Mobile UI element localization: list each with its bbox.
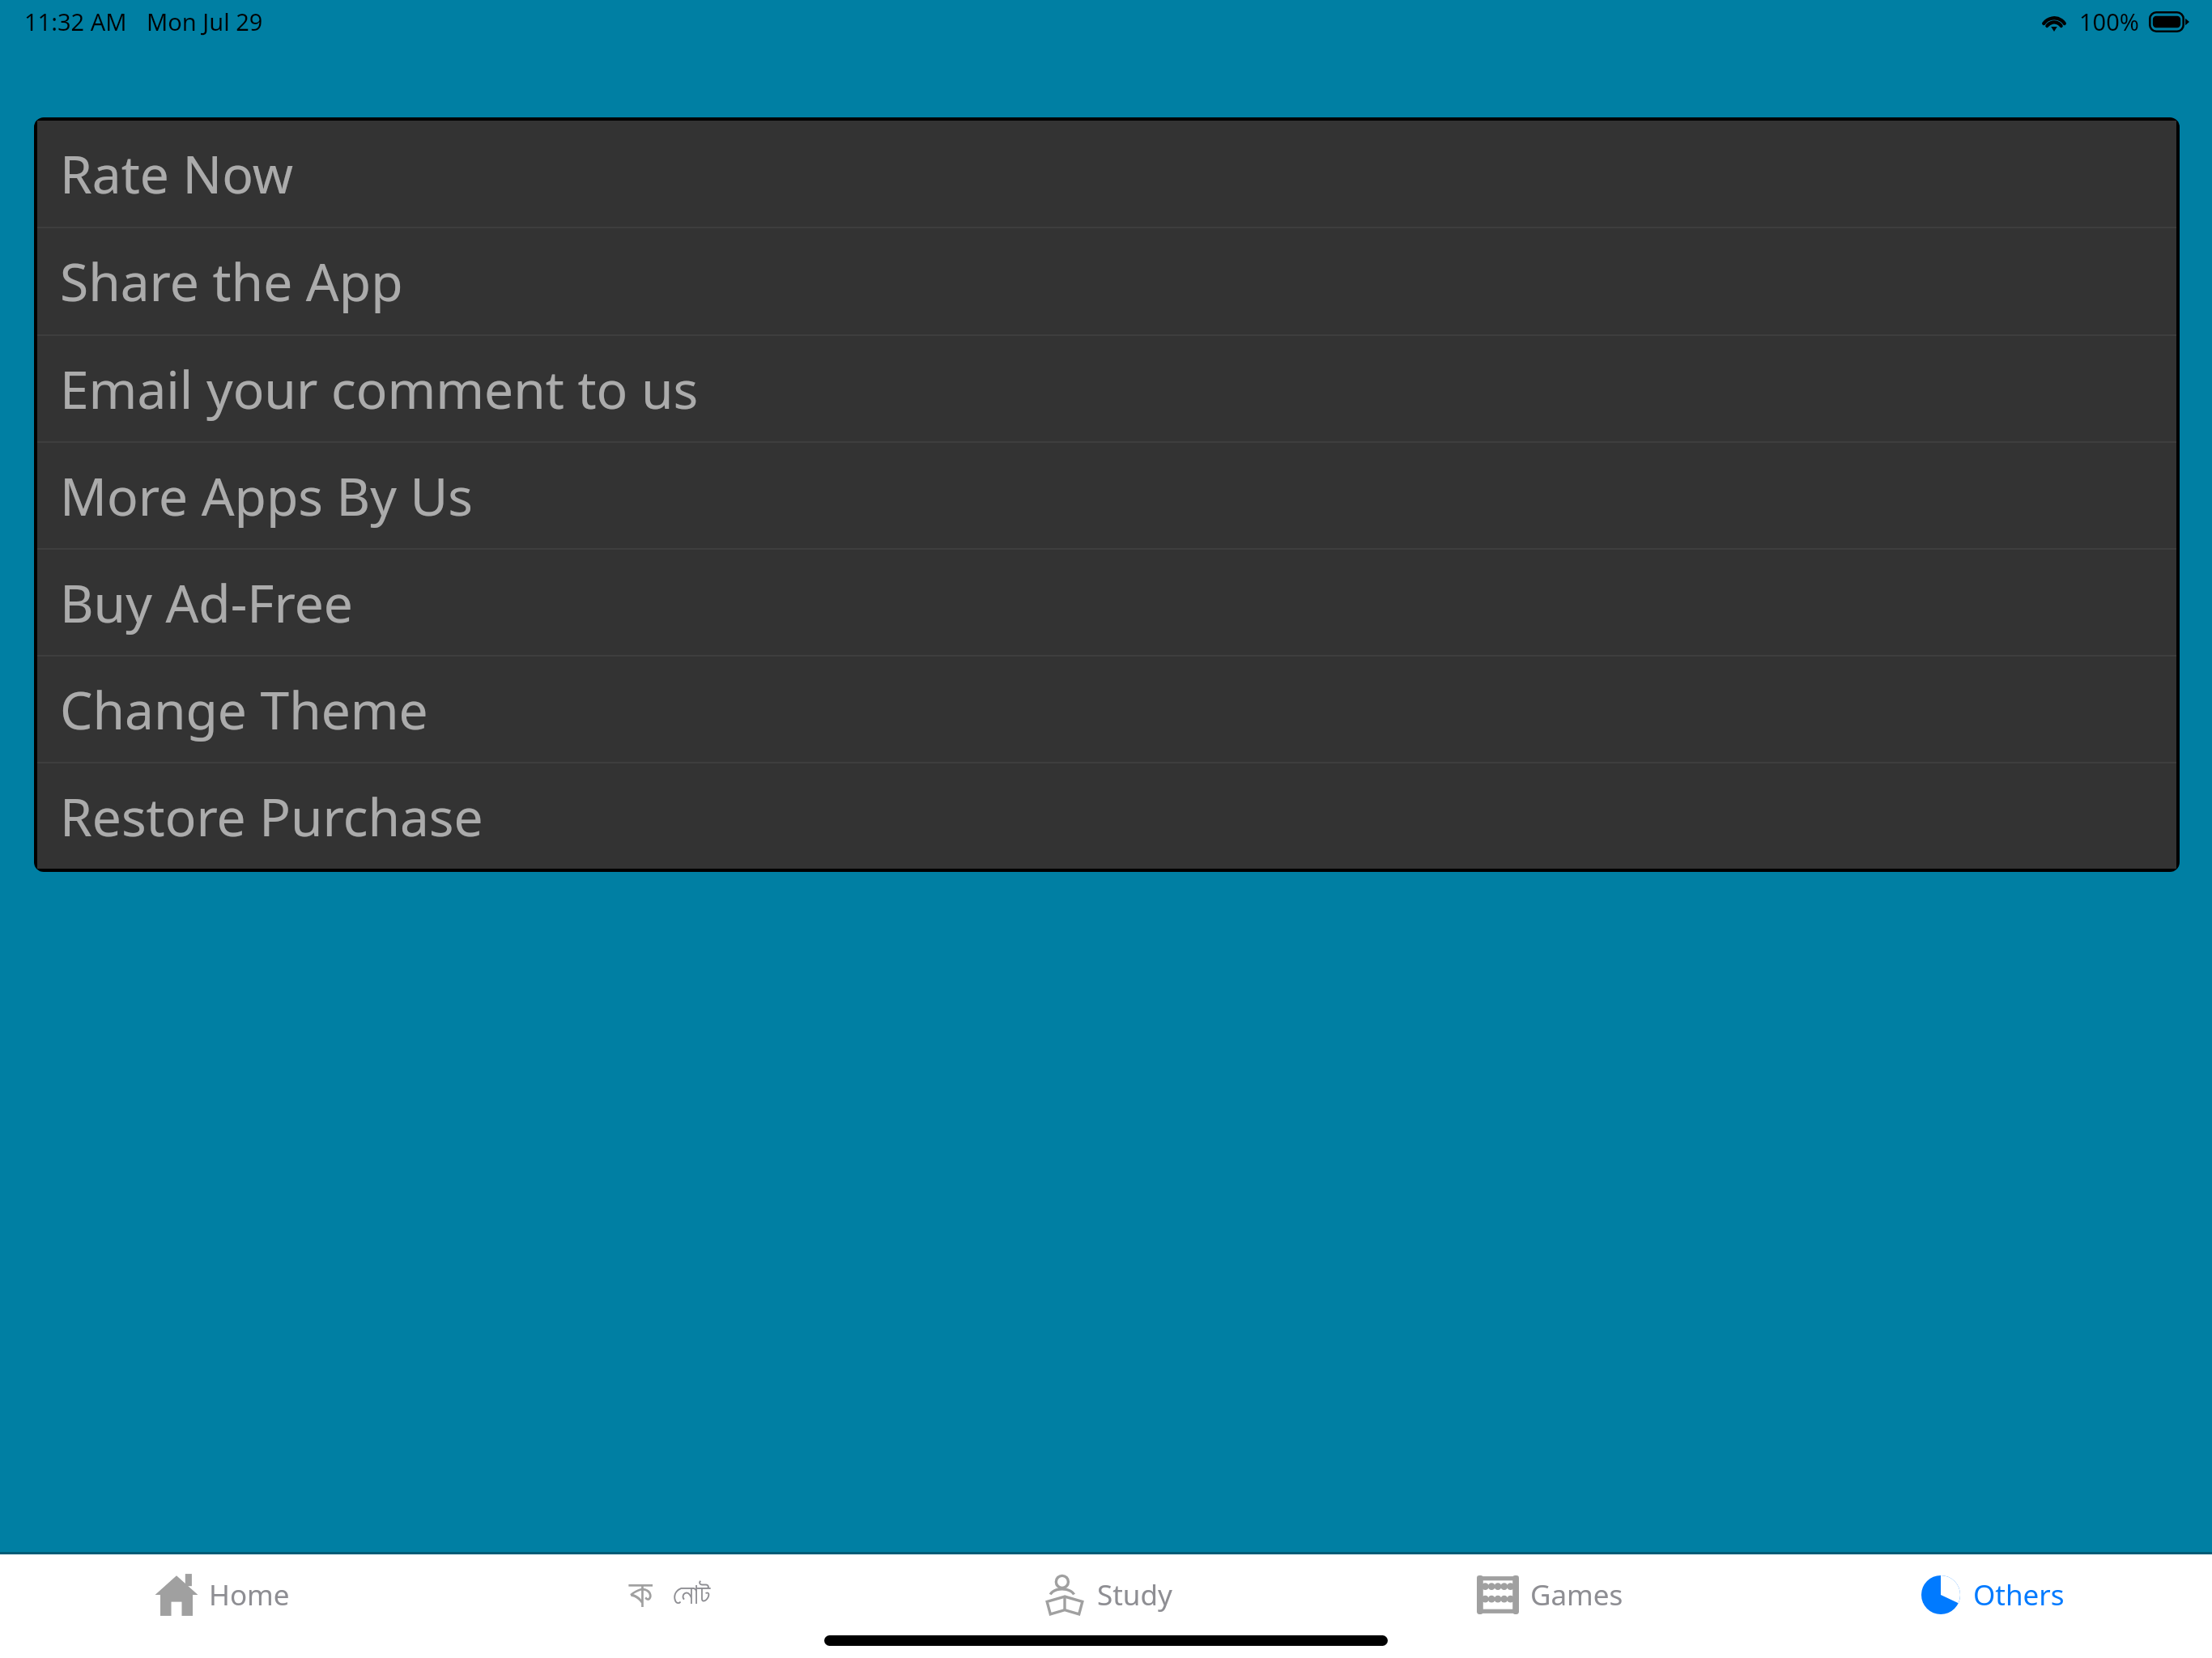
staticText: Home bbox=[209, 1575, 290, 1614]
button[interactable]: Restore Purchase bbox=[37, 763, 2176, 869]
button[interactable]: Home bbox=[0, 1554, 443, 1658]
staticText: Buy Ad-Free bbox=[60, 568, 353, 638]
staticText: Games bbox=[1530, 1575, 1623, 1614]
staticText: 11:32 AM bbox=[24, 6, 127, 37]
staticText: Study bbox=[1097, 1575, 1172, 1614]
other: নোট bbox=[618, 1572, 663, 1618]
other: Others bbox=[1918, 1572, 1963, 1618]
button[interactable]: Change Theme bbox=[37, 657, 2176, 762]
button[interactable]: Rate Now bbox=[37, 121, 2176, 227]
staticText: 100% bbox=[2079, 6, 2139, 37]
other: Home bbox=[154, 1572, 199, 1618]
staticText: ক bbox=[629, 1575, 653, 1615]
staticText: More Apps By Us bbox=[60, 461, 473, 531]
staticText: Mon Jul 29 bbox=[147, 6, 263, 37]
button[interactable]: Buy Ad-Free bbox=[37, 550, 2176, 655]
other: Games bbox=[1475, 1572, 1521, 1618]
staticText: Rate Now bbox=[60, 138, 293, 209]
staticText: নোট bbox=[673, 1581, 711, 1609]
button[interactable]: More Apps By Us bbox=[37, 443, 2176, 548]
button[interactable]: Email your comment to us bbox=[37, 336, 2176, 441]
staticText: Email your comment to us bbox=[60, 354, 699, 424]
button[interactable]: Study bbox=[886, 1554, 1328, 1658]
staticText: Restore Purchase bbox=[60, 781, 483, 852]
staticText: Change Theme bbox=[60, 674, 428, 745]
staticText: Others bbox=[1973, 1575, 2065, 1614]
button[interactable]: Games bbox=[1328, 1554, 1770, 1658]
button[interactable]: নোট bbox=[443, 1554, 886, 1658]
button[interactable]: Share the App bbox=[37, 228, 2176, 334]
button[interactable]: Others bbox=[1770, 1554, 2212, 1658]
staticText: Share the App bbox=[60, 246, 403, 317]
other: Study bbox=[1042, 1572, 1087, 1618]
